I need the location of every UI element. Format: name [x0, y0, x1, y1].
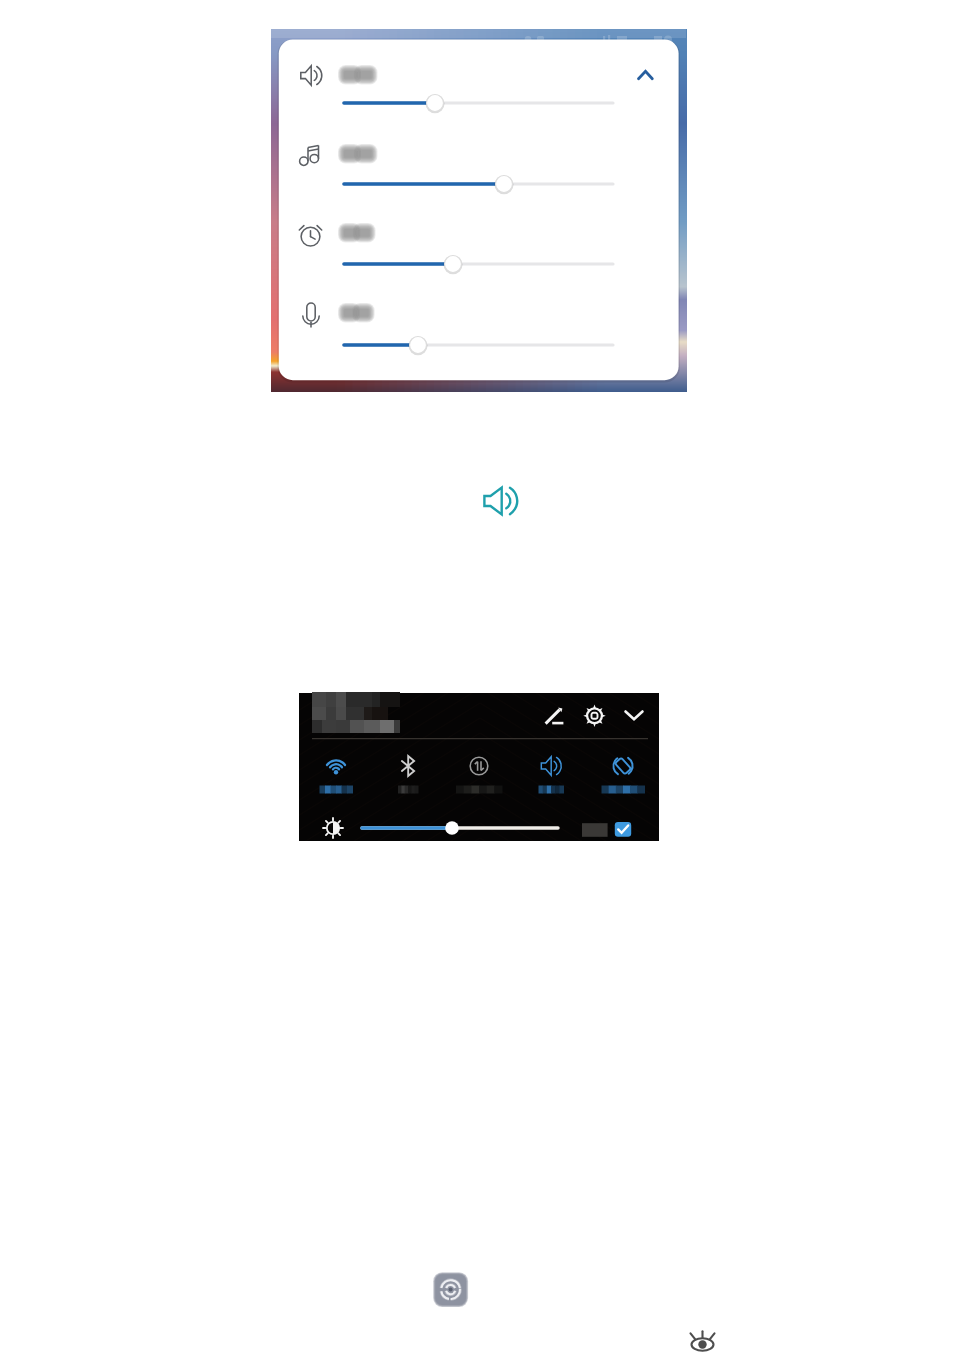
button[interactable]: Volume	[480, 484, 522, 518]
button[interactable]: Collapse volume panel	[629, 60, 663, 92]
button[interactable]: Settings	[578, 700, 610, 732]
button[interactable]: Views	[688, 1330, 718, 1356]
button[interactable]: Ring volume slider	[296, 58, 626, 118]
button[interactable]: Collapse shade	[618, 700, 650, 732]
button[interactable]: Alarm volume slider	[296, 218, 626, 278]
button[interactable]: Auto-rotate	[605, 750, 641, 796]
button[interactable]: Wi-Fi	[318, 750, 354, 796]
button[interactable]: Media volume slider	[296, 138, 626, 198]
button[interactable]: Sound	[533, 750, 569, 796]
button[interactable]: Call volume slider	[296, 297, 626, 357]
button[interactable]: Mobile data	[461, 750, 497, 796]
button[interactable]: Brightness slider	[356, 816, 564, 840]
button[interactable]: Brightness mode	[578, 816, 610, 840]
button[interactable]: Automatic brightness	[611, 816, 635, 840]
button[interactable]: Bluetooth	[390, 750, 426, 796]
button[interactable]: Brightness	[322, 816, 346, 840]
button[interactable]: Edit quick settings	[538, 700, 570, 732]
button[interactable]: Settings shortcut	[435, 1274, 466, 1305]
